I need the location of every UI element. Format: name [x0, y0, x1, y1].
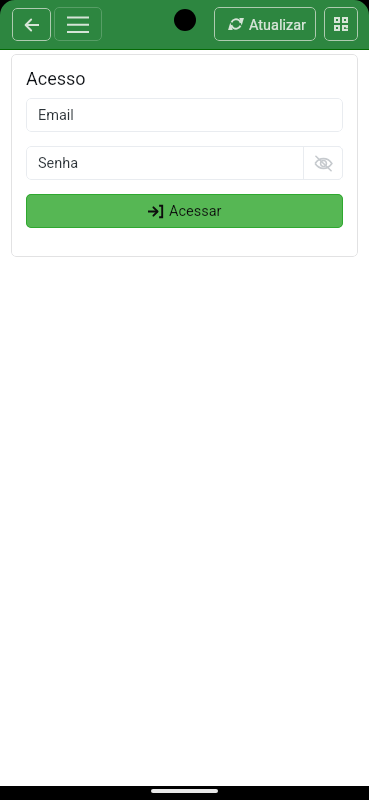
button[interactable]: Show password: [303, 146, 343, 180]
button[interactable]: Atualizar: [214, 7, 316, 41]
button[interactable]: Menu: [54, 7, 102, 41]
staticText: Atualizar: [249, 17, 307, 34]
staticText: Acesso: [26, 68, 86, 89]
staticText: Acessar: [169, 203, 222, 220]
button[interactable]: Acessar: [26, 194, 343, 228]
button[interactable]: Email: [26, 98, 343, 132]
staticText: Email: [38, 107, 74, 124]
button[interactable]: Senha: [26, 146, 303, 180]
button[interactable]: Scan QR code: [324, 7, 358, 41]
button[interactable]: Back: [12, 8, 51, 41]
staticText: Senha: [38, 155, 79, 172]
